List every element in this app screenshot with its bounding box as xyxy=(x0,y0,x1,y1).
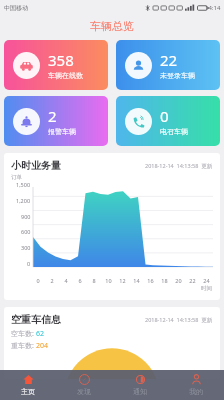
staticText: 16 xyxy=(147,277,154,284)
button[interactable]: 22 xyxy=(116,40,220,90)
staticText: 8 xyxy=(92,277,96,284)
staticText: 发现 xyxy=(77,387,91,396)
staticText: 时间 xyxy=(201,285,212,292)
staticText: 4 xyxy=(64,277,68,284)
staticText: 62 xyxy=(36,329,45,339)
staticText: 358 xyxy=(48,50,74,70)
staticText: 14:14 xyxy=(205,4,221,12)
staticText: 2 xyxy=(48,106,57,126)
staticText: 14 xyxy=(133,277,140,284)
staticText: 中国移动 xyxy=(4,4,28,12)
button[interactable]: 空重车信息 xyxy=(4,307,220,379)
staticText: 10 xyxy=(105,277,112,284)
staticText: 0 xyxy=(27,260,31,267)
button[interactable]: 0 xyxy=(116,96,220,146)
staticText: 1,500 xyxy=(16,181,31,188)
staticText: 2018-12-14 14:13:58 更新 xyxy=(145,316,213,324)
staticText: 18 xyxy=(161,277,168,284)
staticText: 空重车信息 xyxy=(11,313,61,326)
staticText: 通知 xyxy=(133,387,147,396)
staticText: 未登录车辆 xyxy=(160,71,195,80)
staticText: 20 xyxy=(175,277,182,284)
staticText: 车辆总览 xyxy=(90,19,134,33)
staticText: 2 xyxy=(50,277,54,284)
button[interactable]: 358 xyxy=(4,40,108,90)
staticText: 204 xyxy=(36,341,49,351)
staticText: 600 xyxy=(21,228,31,235)
button[interactable]: 通知 xyxy=(112,370,168,400)
staticText: 订单 xyxy=(11,174,22,181)
staticText: 22 xyxy=(160,50,178,70)
staticText: 0 xyxy=(160,106,169,126)
staticText: 空车数: xyxy=(11,329,36,339)
staticText: 1,200 xyxy=(16,197,31,204)
staticText: 主页 xyxy=(21,387,35,396)
staticText: 12 xyxy=(119,277,126,284)
button[interactable]: 我的 xyxy=(168,370,224,400)
staticText: 24 xyxy=(203,277,210,284)
button[interactable]: 主页 xyxy=(0,370,56,400)
staticText: 900 xyxy=(21,213,31,220)
button[interactable]: 2 xyxy=(4,96,108,146)
button[interactable]: 小时业务量 xyxy=(4,153,220,300)
staticText: 300 xyxy=(21,244,31,251)
button[interactable]: 发现 xyxy=(56,370,112,400)
staticText: 电召车辆 xyxy=(160,127,188,136)
staticText: 报警车辆 xyxy=(48,127,76,136)
staticText: 2018-12-14 14:13:58 更新 xyxy=(145,162,213,170)
staticText: 我的 xyxy=(189,387,203,396)
staticText: 22 xyxy=(189,277,196,284)
staticText: 6 xyxy=(78,277,82,284)
staticText: 重车数: xyxy=(11,341,36,351)
staticText: 0 xyxy=(36,277,40,284)
staticText: 车辆在线数 xyxy=(48,71,83,80)
staticText: 小时业务量 xyxy=(11,159,61,172)
